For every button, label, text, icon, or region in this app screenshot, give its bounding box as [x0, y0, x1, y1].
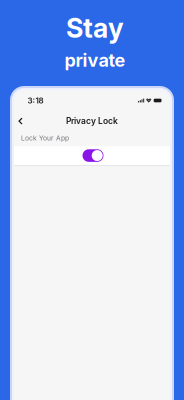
- button[interactable]: Back: [12, 113, 28, 129]
- staticText: private: [64, 49, 125, 71]
- staticText: Stay: [66, 12, 124, 44]
- button[interactable]: Lock Your App: [82, 149, 103, 162]
- staticText: 3:18: [27, 96, 43, 105]
- staticText: Privacy Lock: [66, 116, 118, 126]
- staticText: Lock Your App: [21, 134, 69, 142]
